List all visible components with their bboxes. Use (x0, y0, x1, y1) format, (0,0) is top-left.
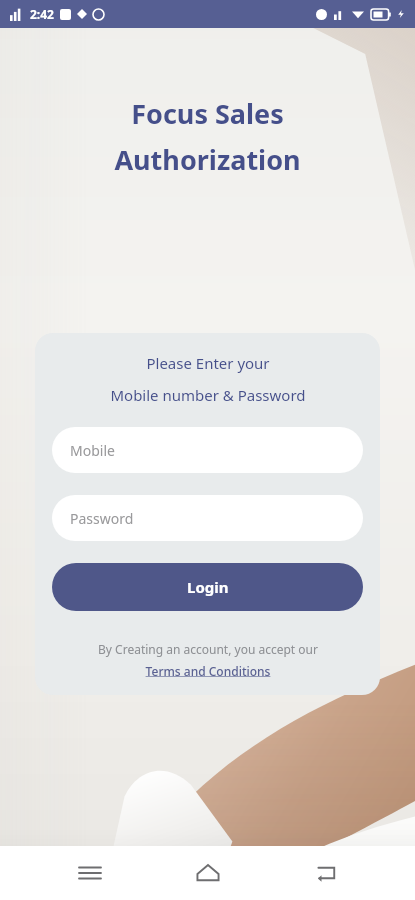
staticText: Login (187, 577, 229, 597)
staticText: Authorization (0, 141, 415, 178)
staticText: By Creating an account, you accept our (98, 641, 318, 657)
staticText: Terms and Conditions (144, 663, 272, 679)
staticText: Mobile number & Password (110, 385, 306, 405)
staticText: Password (70, 509, 134, 528)
staticText: Mobile (70, 441, 115, 460)
button[interactable]: Back (298, 846, 352, 900)
staticText: 2:42 (30, 6, 54, 22)
button[interactable]: Home (181, 846, 235, 900)
button[interactable]: Terms and Conditions (144, 663, 272, 679)
staticText: Focus Sales (0, 95, 415, 132)
button[interactable]: Password (52, 495, 363, 541)
staticText: Please Enter your (146, 353, 270, 373)
button[interactable]: Recent apps (63, 846, 117, 900)
button[interactable]: Login (52, 563, 363, 611)
button[interactable]: Mobile (52, 427, 363, 473)
